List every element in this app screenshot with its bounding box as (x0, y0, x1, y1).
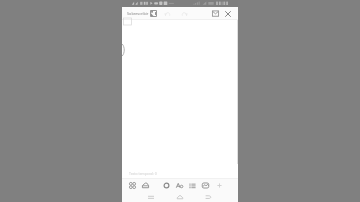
button[interactable]: Home (173, 192, 187, 202)
button[interactable]: Add (213, 178, 225, 192)
button[interactable]: List (186, 178, 198, 192)
button[interactable]: Sobrescribir (127, 7, 149, 20)
button[interactable]: Eraser (160, 178, 172, 192)
button[interactable]: Redo (178, 7, 190, 20)
staticText: Sobrescribir (127, 11, 149, 16)
button[interactable]: Pen (139, 178, 151, 192)
button[interactable]: Image (199, 178, 211, 192)
button[interactable]: Close (222, 7, 234, 20)
button[interactable]: Back (201, 192, 215, 202)
button[interactable]: Send (209, 7, 221, 20)
button[interactable]: Recents (144, 192, 158, 202)
button[interactable]: Text (173, 178, 185, 192)
staticText: Texto temporal: 0 (129, 171, 157, 176)
button[interactable]: Shapes (126, 178, 138, 192)
button[interactable]: Save (147, 7, 159, 20)
button[interactable]: Undo (161, 7, 173, 20)
